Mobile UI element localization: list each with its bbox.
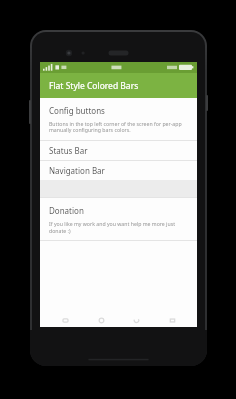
- button[interactable]: Menu: [161, 313, 183, 327]
- staticText: Flat Style Colored Bars: [49, 80, 139, 92]
- button[interactable]: Home: [90, 313, 112, 327]
- staticText: Status Bar: [49, 145, 88, 156]
- button[interactable]: Status Bar: [40, 141, 197, 160]
- staticText: Navigation Bar: [49, 165, 105, 176]
- button[interactable]: Recents: [54, 313, 76, 327]
- button[interactable]: Back: [125, 313, 147, 327]
- button[interactable]: Donation: [40, 198, 197, 240]
- button[interactable]: Config buttons: [40, 98, 197, 140]
- staticText: Config buttons: [49, 105, 105, 116]
- button[interactable]: Navigation Bar: [40, 161, 197, 180]
- staticText: If you like my work and you want help me…: [49, 220, 188, 234]
- staticText: Buttons in the top left corner of the sc…: [49, 120, 182, 134]
- staticText: Donation: [49, 205, 84, 216]
